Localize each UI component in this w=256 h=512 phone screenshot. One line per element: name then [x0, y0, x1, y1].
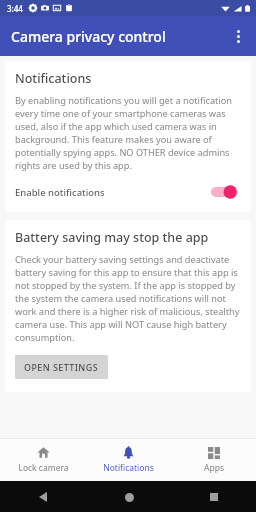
staticText: Enable notifications [15, 186, 105, 199]
staticText: Battery saving may stop the app [15, 229, 209, 246]
button[interactable]: Back [30, 484, 56, 510]
button[interactable]: OPEN SETTINGS [15, 355, 108, 379]
button[interactable]: Apps [171, 439, 256, 481]
staticText: By enabling notifications you will get a… [15, 94, 241, 172]
staticText: Notifications [15, 70, 92, 87]
staticText: 3:44 [7, 3, 23, 14]
button[interactable]: Recent apps [201, 484, 227, 510]
button[interactable]: More options [220, 18, 256, 54]
button[interactable]: Notifications [86, 439, 171, 481]
staticText: Apps [204, 462, 224, 474]
button[interactable]: Home [116, 484, 142, 510]
staticText: Check your battery saving settings and d… [15, 253, 241, 344]
staticText: OPEN SETTINGS [24, 361, 99, 373]
staticText: Lock camera [18, 462, 69, 474]
other: Enable notifications toggle [211, 184, 241, 200]
button[interactable]: Enable notifications [15, 184, 241, 200]
staticText: Camera privacy control [11, 27, 166, 46]
button[interactable]: Lock camera [0, 439, 86, 481]
staticText: Notifications [103, 462, 154, 474]
